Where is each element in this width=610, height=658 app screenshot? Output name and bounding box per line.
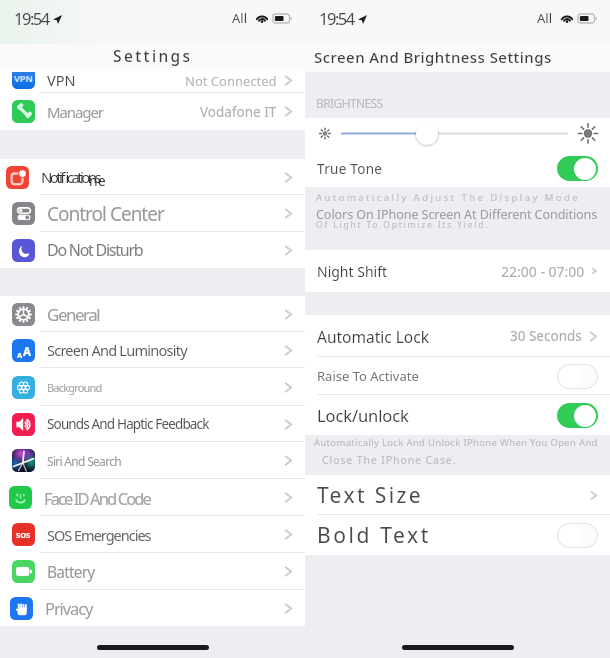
staticText: Automatically Adjust The Display Mode [316,191,581,204]
staticText: Night Shift [317,262,388,281]
staticText: Vodafone IT [200,103,277,121]
button[interactable]: Automatic Lock [305,315,610,357]
staticText: Text Size [317,481,424,510]
other: Location [358,15,367,24]
button[interactable]: Background [0,368,305,406]
button[interactable]: Control Center [0,195,305,232]
staticText: SOS Emergencies [47,525,151,545]
other: Battery [578,14,597,23]
button[interactable]: Switch off [557,364,598,389]
button[interactable]: Night Shift [305,250,610,292]
button[interactable]: Text Size [305,475,610,515]
staticText: Siri And Search [47,453,121,469]
staticText: 19:54 [14,7,49,29]
button[interactable]: Switch on [557,403,598,428]
staticText: Privacy [45,597,93,619]
button[interactable]: SOS [0,516,305,553]
staticText: Close The IPhone Case. [322,453,457,467]
staticText: Background [47,380,102,395]
button[interactable]: True Tone [305,150,610,187]
other: Location [53,15,62,24]
staticText: Settings [113,45,193,66]
staticText: Battery [47,561,95,582]
staticText: BRIGHTNESS [316,95,383,111]
button[interactable]: Bold Text [305,515,610,555]
button[interactable]: Manager [0,93,305,130]
staticText: All [232,9,248,27]
staticText: Screen And Luminosity [47,340,187,360]
button[interactable]: VPN [0,68,305,93]
staticText: 30 Seconds [510,327,582,345]
staticText: A [23,344,31,360]
staticText: A [17,350,23,360]
staticText: True Tone [317,160,383,178]
other: Wi-Fi [256,14,268,23]
staticText: Do Not Disturb [47,239,143,261]
button[interactable]: Raise To Activate [305,357,610,395]
staticText: Automatically Lock And Unlock IPhone Whe… [314,436,598,449]
staticText: Notifications [41,167,100,187]
button[interactable]: Battery [0,553,305,590]
button[interactable]: A [0,332,305,368]
button[interactable]: Switch on [557,156,598,181]
staticText: Face ID And Code [44,487,150,509]
button[interactable]: Brightness [305,118,610,150]
staticText: ne [89,171,106,190]
staticText: Sounds And Haptic Feedback [47,415,209,433]
other: Wi-Fi [561,14,573,23]
staticText: VPN [47,70,76,90]
staticText: Lock/unlock [317,404,409,426]
staticText: Not Connected [185,72,277,90]
staticText: General [47,303,100,326]
staticText: SOS [16,530,31,540]
staticText: 19:54 [319,7,354,29]
button[interactable]: Sounds And Haptic Feedback [0,406,305,442]
staticText: Manager [47,102,103,122]
button[interactable]: Lock/unlock [305,395,610,435]
staticText: Control Center [47,201,164,227]
staticText: Bold Text [317,521,431,550]
button[interactable]: General [0,296,305,332]
button[interactable]: Notifications [0,159,305,195]
staticText: Colors On IPhone Screen At Different Con… [316,206,598,223]
staticText: Automatic Lock [317,326,429,347]
staticText: Raise To Activate [317,367,419,385]
button[interactable]: Face ID And Code [0,479,305,516]
staticText: VPN [14,72,33,85]
button[interactable]: Switch off [557,523,598,548]
other: Battery [273,14,292,23]
staticText: All [537,9,553,27]
staticText: Of Light To Optimize Its Yield. [316,219,490,231]
button[interactable]: Siri And Search [0,442,305,479]
button[interactable]: Privacy [0,590,305,626]
staticText: Screen And Brightness Settings [314,47,552,67]
staticText: 22:00 - 07:00 [501,262,585,281]
button[interactable]: Do Not Disturb [0,232,305,268]
